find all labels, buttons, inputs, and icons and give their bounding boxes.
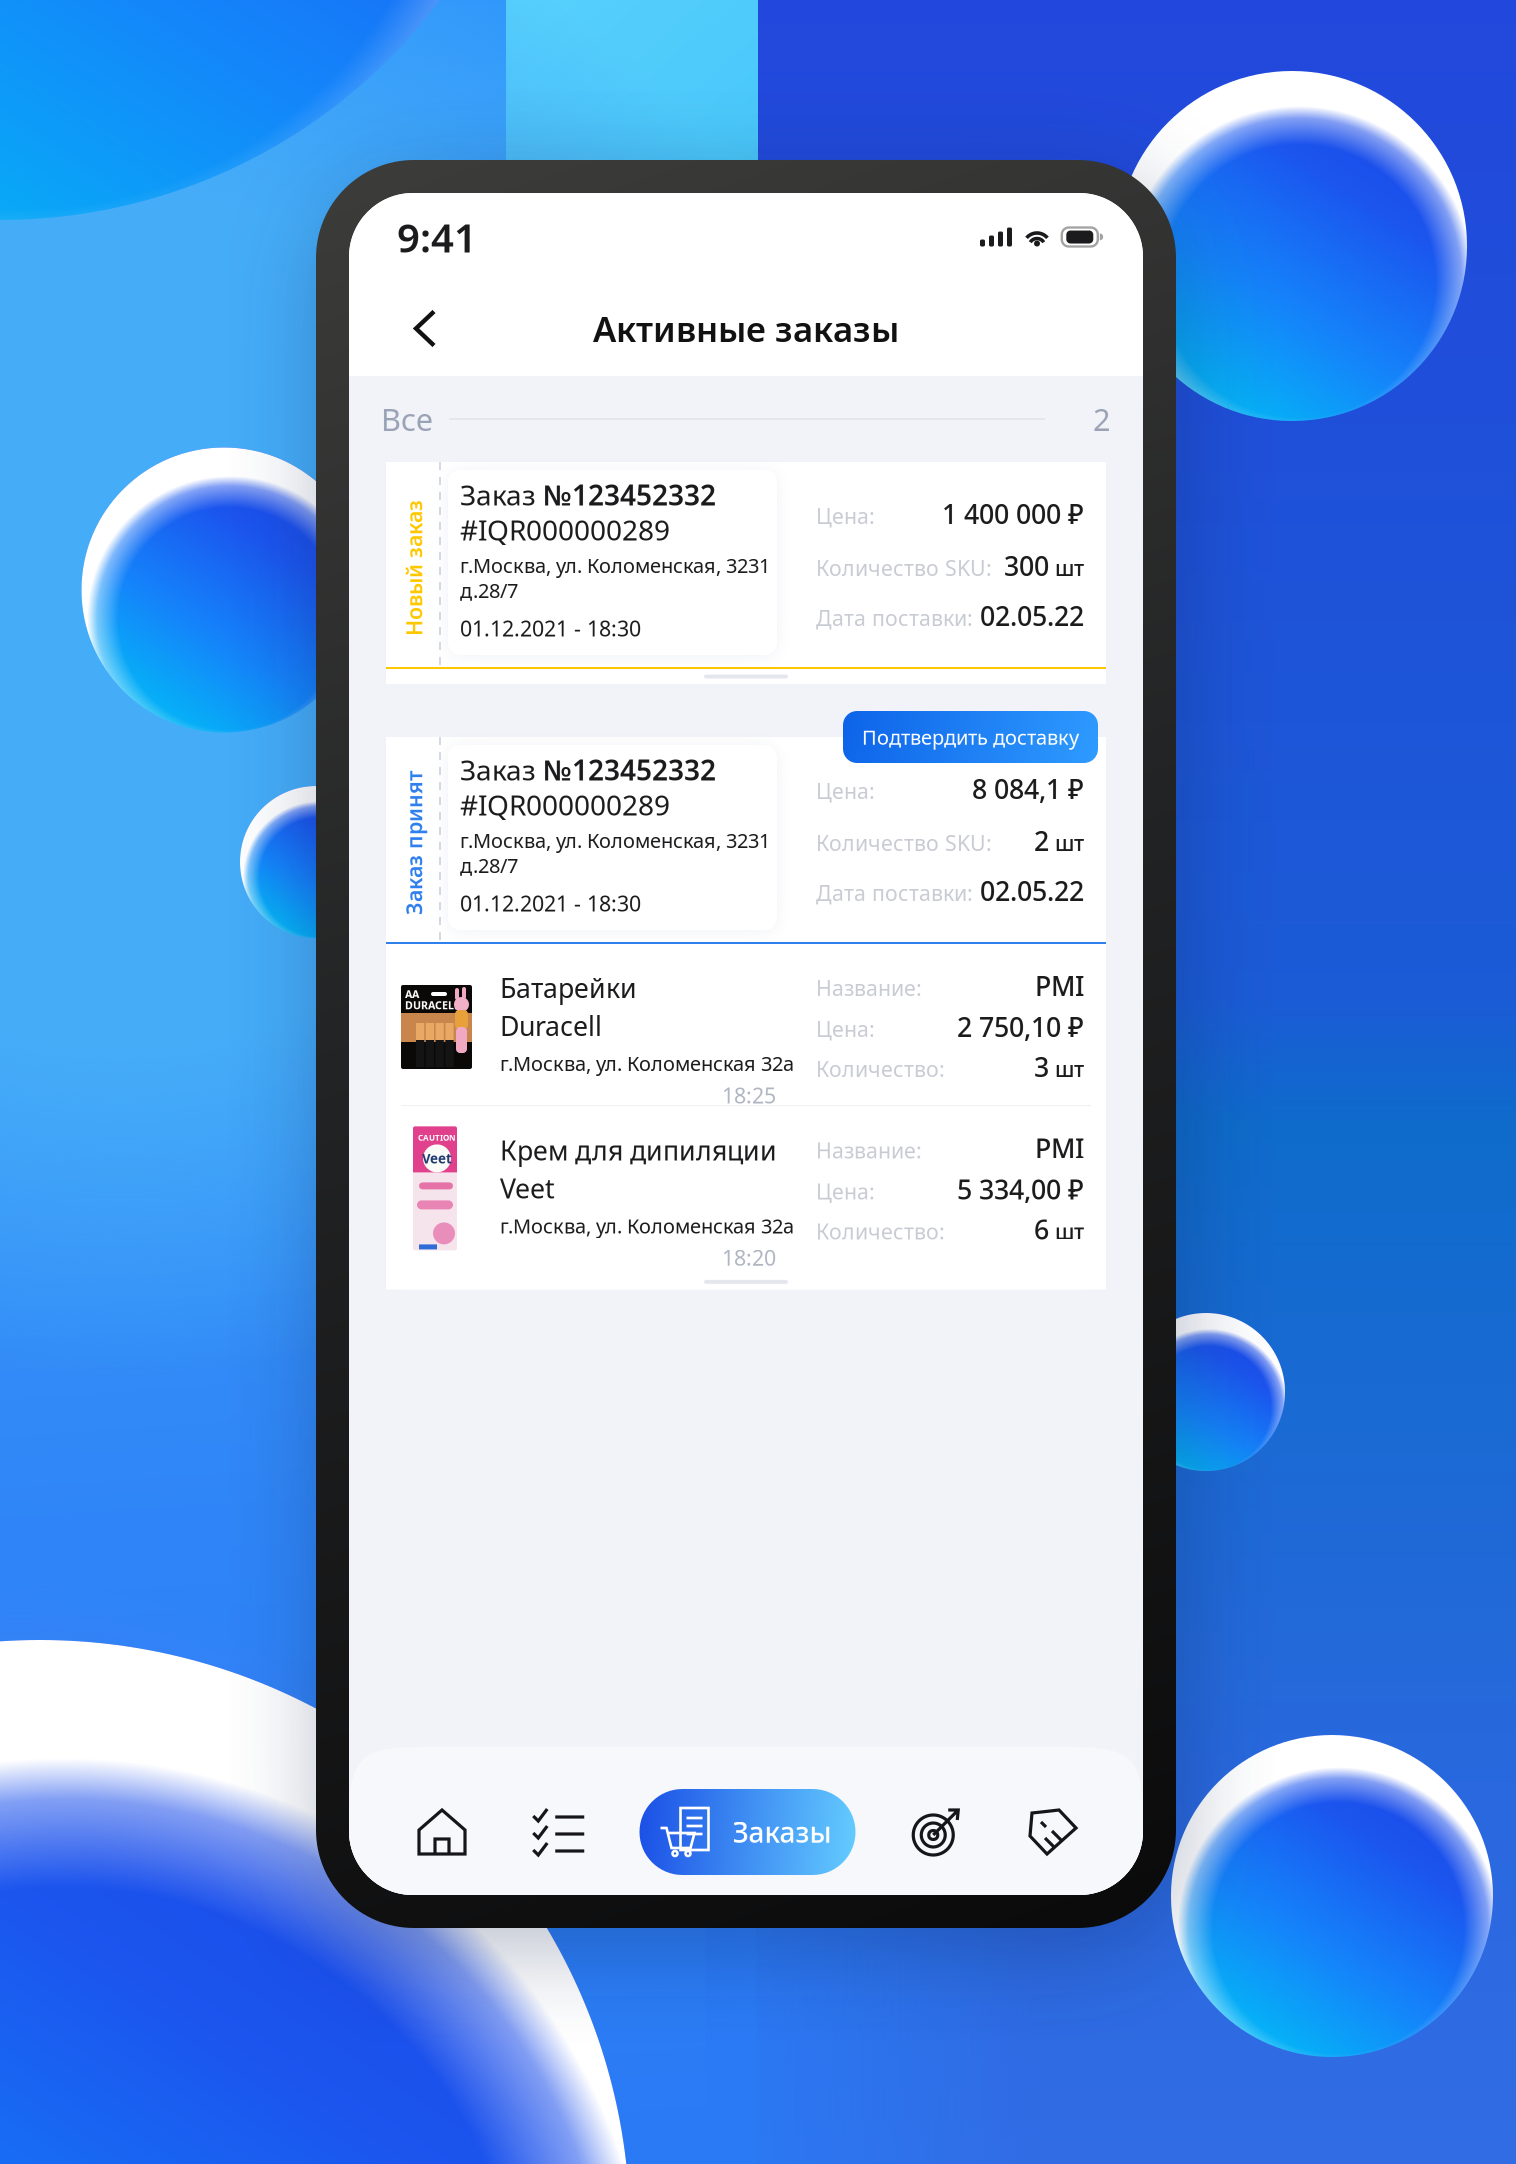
staticText: Количество: [816,1217,945,1245]
staticText: 02.05.22 [980,873,1084,908]
staticText: Veet [500,1170,555,1206]
staticText: 9:41 [397,210,477,263]
staticText: Veet [422,1149,452,1167]
button[interactable]: Заказы [639,1789,855,1875]
staticText: 5 334,00 ₽ [957,1171,1084,1207]
staticText: Количество SKU: [816,829,992,857]
staticText: DURACELL [405,998,460,1012]
button[interactable]: Акции [1017,1776,1089,1888]
staticText: 01.12.2021 - 18:30 [460,614,641,642]
staticText: Заказы [732,1813,831,1851]
staticText: Цена: [816,1177,875,1205]
staticText: Цена: [816,1015,875,1043]
staticText: Активные заказы [593,305,899,351]
staticText: г.Москва, ул. Коломенская, 3231 [460,827,770,854]
staticText: Название: [816,974,922,1002]
staticText: #IQR000000289 [460,786,670,823]
staticText: шт [1049,1217,1084,1245]
staticText: Крем для дипиляции [500,1132,777,1168]
staticText: д.28/7 [460,852,518,879]
staticText: г.Москва, ул. Коломенская 32а [500,1212,794,1239]
staticText: шт [1049,554,1084,582]
staticText: Батарейки [500,970,637,1005]
staticText: 3 [1034,1049,1049,1084]
staticText: AA [405,987,419,1001]
staticText: Дата поставки: [816,604,973,632]
staticText: Подтвердить доставку [862,724,1079,750]
staticText: PMI [1035,1130,1084,1166]
staticText: 8 084,1 ₽ [972,771,1084,806]
button[interactable]: Назад [385,288,465,368]
staticText: Заказ [460,751,543,788]
staticText: 18:20 [722,1243,776,1272]
staticText: CAUTION [418,1132,456,1143]
staticText: 2 750,10 ₽ [957,1009,1084,1044]
staticText: PMI [1035,968,1084,1003]
staticText: #IQR000000289 [460,511,670,548]
staticText: Название: [816,1136,922,1164]
staticText: №123452332 [543,476,716,513]
staticText: Количество SKU: [816,554,992,582]
staticText: 01.12.2021 - 18:30 [460,889,641,917]
button[interactable]: Задачи [523,1776,595,1888]
staticText: Дата поставки: [816,879,973,907]
staticText: Количество: [816,1055,945,1083]
staticText: 300 [1004,548,1049,583]
button[interactable]: Главная [406,1776,478,1888]
staticText: Новый заказ [346,554,482,582]
staticText: 1 400 000 ₽ [942,496,1084,531]
staticText: Заказ [460,476,543,513]
staticText: Цена: [816,502,875,530]
staticText: 6 [1034,1211,1049,1247]
staticText: 2 [1093,399,1111,439]
staticText: д.28/7 [460,577,518,604]
staticText: Цена: [816,777,875,805]
button[interactable]: Цели [900,1776,972,1888]
staticText: №123452332 [543,751,716,788]
staticText: 02.05.22 [980,598,1084,633]
button[interactable]: Подтвердить доставку [843,711,1098,763]
staticText: шт [1049,1055,1084,1083]
staticText: шт [1049,829,1084,857]
staticText: 18:25 [722,1081,776,1109]
staticText: г.Москва, ул. Коломенская 32а [500,1050,794,1077]
staticText: Заказ принят [342,829,486,857]
staticText: г.Москва, ул. Коломенская, 3231 [460,552,770,579]
staticText: 2 [1034,823,1049,858]
staticText: Duracell [500,1008,602,1043]
staticText: Все [381,399,433,439]
